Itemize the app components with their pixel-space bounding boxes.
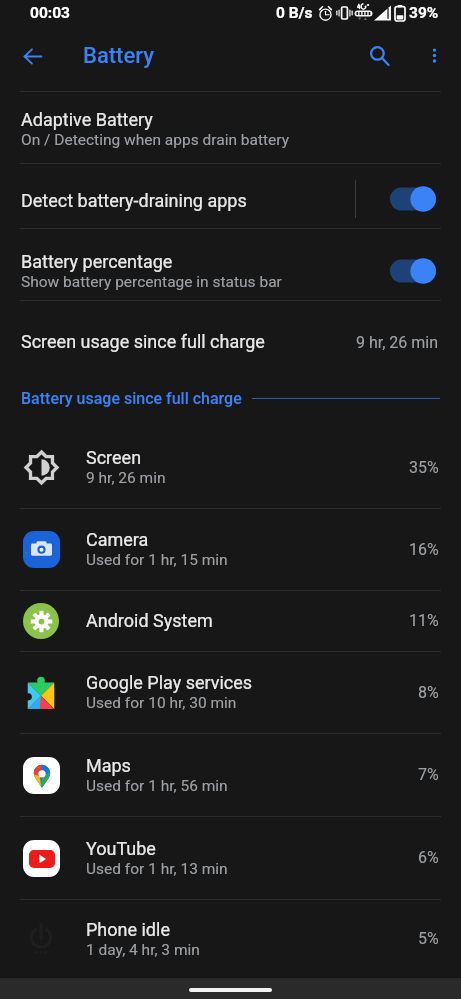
button[interactable]: Detect battery-draining apps [0,164,461,229]
staticText: 0 B/s [276,4,313,22]
button[interactable]: Battery percentage [0,229,461,301]
staticText: Show battery percentage in status bar [21,273,282,291]
staticText: 6% [418,848,439,867]
staticText: Adaptive Battery [21,109,153,130]
button[interactable]: Android System [0,590,461,651]
button[interactable]: Screen [0,426,461,508]
staticText: Used for 1 hr, 15 min [86,551,228,569]
staticText: Android System [86,610,213,631]
staticText: 00:03 [30,4,70,22]
staticText: 9 hr, 26 min [356,333,439,352]
staticText: 9 hr, 26 min [86,469,166,487]
staticText: 7% [418,765,439,784]
button[interactable]: YouTube [0,816,461,899]
staticText: Battery usage since full charge [21,389,242,408]
staticText: Used for 10 hr, 30 min [86,694,237,712]
staticText: Used for 1 hr, 56 min [86,777,228,795]
button[interactable]: More options [414,35,455,76]
staticText: Camera [86,529,149,550]
button[interactable]: Back [14,38,50,74]
staticText: On / Detecting when apps drain battery [21,131,290,149]
staticText: Battery [83,43,154,69]
staticText: 16% [409,540,439,559]
button[interactable]: Search [359,35,400,76]
staticText: Used for 1 hr, 13 min [86,860,228,878]
staticText: 39% [409,4,439,22]
staticText: 5% [418,929,439,948]
button[interactable]: Maps [0,733,461,816]
staticText: Maps [86,755,131,776]
button[interactable]: Toggle Detect battery-draining apps [381,179,445,219]
button[interactable]: Adaptive Battery [0,91,461,163]
staticText: Screen [86,447,142,468]
staticText: Battery percentage [21,251,173,272]
staticText: 11% [409,611,439,630]
staticText: Screen usage since full charge [21,331,356,352]
button[interactable]: Screen usage since full charge [0,300,461,370]
staticText: 8% [418,683,439,702]
staticText: YouTube [86,838,156,859]
staticText: 1 day, 4 hr, 3 min [86,941,200,959]
staticText: Detect battery-draining apps [21,190,247,211]
button[interactable]: Google Play services [0,651,461,733]
staticText: Google Play services [86,672,253,693]
staticText: Phone idle [86,919,170,940]
staticText: 35% [409,458,439,477]
button[interactable]: Phone idle [0,899,461,978]
button[interactable]: Toggle Battery percentage [381,251,445,291]
button[interactable]: Camera [0,508,461,590]
